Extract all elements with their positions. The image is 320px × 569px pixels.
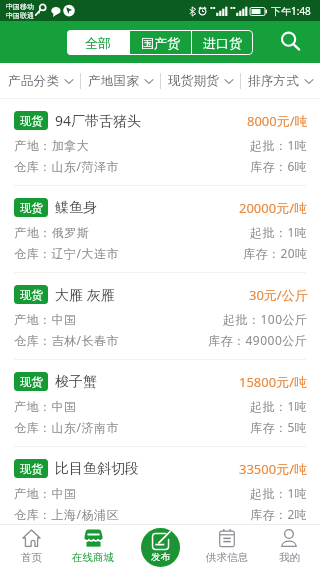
staticText: 15800元/吨 [239, 373, 308, 391]
button[interactable]: 供求信息 [196, 524, 258, 569]
staticText: 30元/公斤 [249, 286, 308, 304]
staticText: 起批：100公斤 [223, 311, 308, 327]
staticText: 我的 [279, 551, 300, 564]
staticText: 仓库：吉林/长春市 [14, 332, 119, 348]
staticText: 梭子蟹 [55, 373, 97, 391]
button[interactable]: 国产货 [130, 30, 191, 55]
staticText: 33500元/吨 [239, 460, 308, 478]
staticText: 中国联通 [6, 11, 34, 20]
staticText: 进口货 [203, 35, 242, 51]
button[interactable]: 现货 [0, 99, 320, 186]
button[interactable]: 产品分类 [0, 63, 80, 99]
staticText: 国产货 [141, 35, 180, 51]
staticText: 产地：加拿大 [14, 138, 89, 153]
staticText: 20000元/吨 [239, 199, 308, 217]
button[interactable]: 搜索 [278, 29, 304, 55]
button[interactable]: 发布 [141, 528, 180, 567]
button[interactable]: 在线商城 [62, 524, 124, 569]
button[interactable]: 现货 [0, 273, 320, 360]
staticText: 大雁 灰雁 [55, 285, 115, 304]
staticText: 产地：中国 [14, 486, 77, 501]
staticText: 产地：中国 [14, 399, 77, 414]
staticText: 产地：中国 [14, 312, 77, 327]
staticText: 库存：20吨 [243, 245, 308, 261]
staticText: 库存：5吨 [250, 419, 308, 435]
staticText: 起批：1吨 [250, 485, 308, 501]
staticText: 现货 [20, 288, 43, 302]
button[interactable]: 首页 [0, 524, 62, 569]
button[interactable]: 现货期货 [161, 63, 240, 99]
button[interactable]: 现货 [0, 447, 320, 534]
staticText: 8000元/吨 [247, 112, 308, 130]
staticText: 仓库：上海/杨浦区 [14, 506, 119, 522]
staticText: 发布 [151, 551, 171, 563]
staticText: 中国移动 [6, 2, 34, 11]
staticText: 现货期货 [168, 73, 220, 89]
button[interactable]: 现货 [0, 186, 320, 273]
staticText: 供求信息 [206, 551, 248, 564]
staticText: 仓库：山东/济南市 [14, 419, 119, 435]
staticText: 库存：2吨 [250, 506, 308, 522]
staticText: 下午1:48 [271, 4, 311, 18]
staticText: 起批：1吨 [250, 398, 308, 414]
staticText: 首页 [21, 551, 42, 564]
staticText: 排序方式 [248, 73, 300, 89]
staticText: 鲽鱼身 [55, 199, 97, 217]
button[interactable]: 产地国家 [81, 63, 160, 99]
staticText: 产地国家 [88, 73, 140, 89]
button[interactable]: 我的 [258, 524, 320, 569]
staticText: 现货 [20, 462, 43, 476]
staticText: 库存：6吨 [250, 158, 308, 174]
button[interactable]: 排序方式 [241, 63, 320, 99]
staticText: 全部 [85, 35, 111, 51]
staticText: 现货 [20, 375, 43, 389]
staticText: 94厂带舌猪头 [55, 111, 142, 130]
staticText: 在线商城 [72, 551, 114, 564]
staticText: 现货 [20, 201, 43, 215]
staticText: 起批：1吨 [250, 224, 308, 240]
staticText: 产地：俄罗斯 [14, 225, 89, 240]
button[interactable]: 进口货 [192, 30, 253, 55]
staticText: 仓库：山东/菏泽市 [14, 158, 119, 174]
staticText: 比目鱼斜切段 [55, 460, 139, 478]
staticText: 库存：49000公斤 [208, 332, 308, 348]
staticText: 产品分类 [8, 73, 60, 89]
button[interactable]: 全部 [67, 30, 129, 55]
staticText: 现货 [20, 114, 43, 128]
staticText: 起批：1吨 [250, 137, 308, 153]
button[interactable]: 现货 [0, 360, 320, 447]
staticText: 仓库：辽宁/大连市 [14, 245, 119, 261]
